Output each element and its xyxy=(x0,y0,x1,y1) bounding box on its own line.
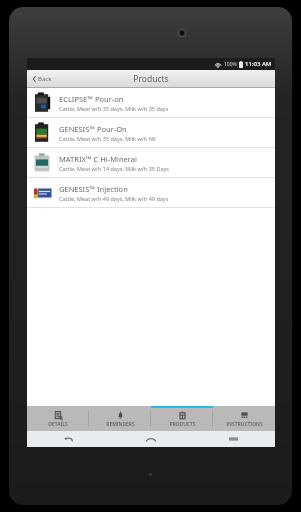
staticText: PRODUCTS xyxy=(169,421,196,428)
button[interactable]: GENESIS™ Pour-On xyxy=(27,118,275,147)
staticText: Products xyxy=(133,73,169,85)
staticText: DETAILS xyxy=(48,421,68,428)
button[interactable]: Back xyxy=(30,73,55,85)
staticText: Cattle, Meat w/h 35 days, Milk w/h Nil xyxy=(59,135,156,142)
button[interactable]: Back xyxy=(27,431,109,447)
staticText: 100% xyxy=(224,61,237,68)
button[interactable]: MATRIX™ C Hi-Mineral xyxy=(27,148,275,177)
staticText: REMINDERS xyxy=(106,421,135,428)
staticText: INSTRUCTIONS xyxy=(226,421,263,428)
staticText: ECLIPSE™ Pour-on xyxy=(59,94,124,104)
staticText: Back xyxy=(38,75,52,83)
button[interactable]: Recent apps xyxy=(192,431,275,447)
button[interactable]: Home xyxy=(109,431,192,447)
staticText: Cattle, Meat w/h 49 days, Milk w/h 49 da… xyxy=(59,195,169,202)
staticText: GENESIS™ Pour-On xyxy=(59,124,127,134)
button[interactable]: ECLIPSE™ Pour-on xyxy=(27,88,275,117)
button[interactable]: GENESIS™ Injection xyxy=(27,178,275,207)
staticText: MATRIX™ C Hi-Mineral xyxy=(59,154,137,164)
staticText: GENESIS™ Injection xyxy=(59,184,128,194)
staticText: Cattle, Meat w/h 14 days, Milk w/h 35 Da… xyxy=(59,165,169,172)
staticText: Cattle, Meat w/h 35 days, Milk w/h 35 da… xyxy=(59,105,169,112)
button[interactable]: PRODUCTS xyxy=(151,406,213,431)
button[interactable]: INSTRUCTIONS xyxy=(213,406,275,431)
staticText: 11:03 AM xyxy=(245,60,272,68)
button[interactable]: REMINDERS xyxy=(89,406,151,431)
button[interactable]: DETAILS xyxy=(27,406,89,431)
